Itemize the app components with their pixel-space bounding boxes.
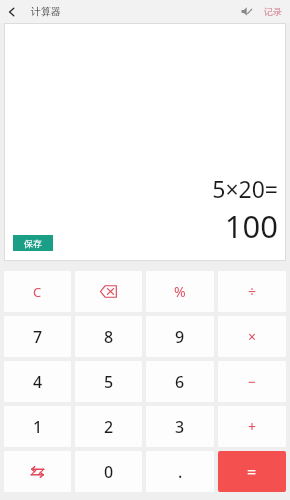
staticText: 记录 [264, 6, 282, 17]
button[interactable]: Back [0, 0, 24, 23]
button[interactable]: Swap [4, 451, 71, 492]
staticText: C [33, 283, 42, 301]
button[interactable]: 记录 [263, 6, 283, 17]
staticText: % [174, 282, 186, 301]
staticText: 6 [175, 371, 185, 393]
staticText: = [247, 461, 257, 483]
staticText: . [178, 461, 183, 483]
button[interactable]: 9 [146, 316, 214, 357]
button[interactable]: Backspace [75, 271, 142, 312]
staticText: 8 [104, 326, 114, 348]
button[interactable]: 2 [75, 406, 142, 447]
staticText: 5 [104, 371, 114, 393]
button[interactable]: 6 [146, 361, 214, 402]
staticText: + [248, 417, 257, 436]
button[interactable]: 4 [4, 361, 71, 402]
staticText: 9 [175, 326, 185, 348]
button[interactable]: × [218, 316, 286, 357]
staticText: ÷ [248, 282, 257, 301]
staticText: 计算器 [31, 5, 61, 18]
staticText: 100 [224, 205, 278, 247]
button[interactable]: . [146, 451, 214, 492]
button[interactable]: C [4, 271, 71, 312]
button[interactable]: 7 [4, 316, 71, 357]
staticText: 保存 [24, 238, 42, 249]
staticText: 3 [175, 416, 185, 438]
staticText: × [248, 327, 257, 346]
staticText: 4 [33, 371, 43, 393]
button[interactable]: 5 [75, 361, 142, 402]
button[interactable]: 8 [75, 316, 142, 357]
staticText: − [248, 372, 257, 391]
button[interactable]: ÷ [218, 271, 286, 312]
button[interactable]: 1 [4, 406, 71, 447]
button[interactable]: 保存 [13, 235, 53, 251]
staticText: 7 [33, 326, 43, 348]
button[interactable]: − [218, 361, 286, 402]
staticText: 2 [104, 416, 114, 438]
button[interactable]: 0 [75, 451, 142, 492]
staticText: 1 [33, 416, 43, 438]
button[interactable]: % [146, 271, 214, 312]
staticText: 5×20= [212, 173, 278, 204]
button[interactable]: 3 [146, 406, 214, 447]
button[interactable]: Mute [235, 0, 257, 23]
button[interactable]: + [218, 406, 286, 447]
button[interactable]: = [218, 451, 286, 492]
staticText: 0 [104, 461, 114, 483]
